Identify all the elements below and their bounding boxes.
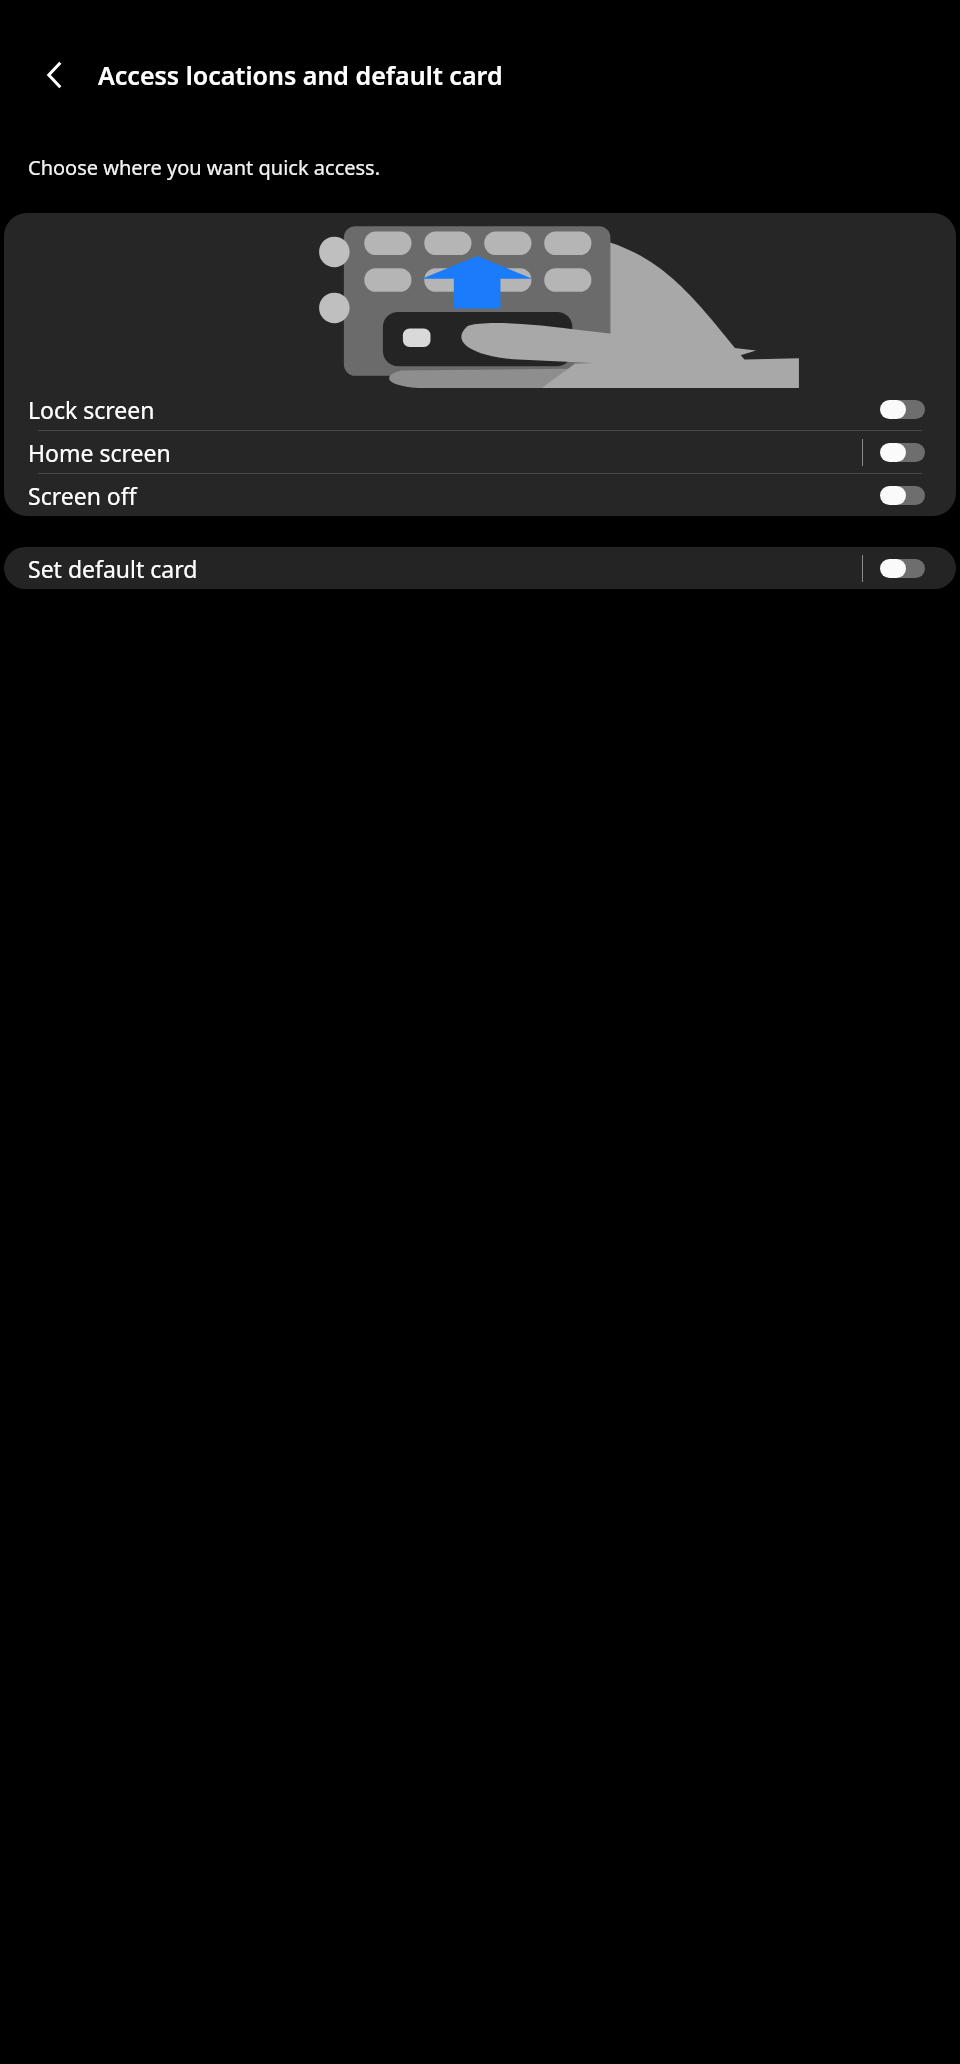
staticText: Home screen: [28, 437, 862, 468]
staticText: Set default card: [28, 553, 862, 584]
staticText: Choose where you want quick access.: [28, 154, 381, 181]
button[interactable]: Lock screen: [4, 388, 956, 430]
button[interactable]: Screen off: [4, 474, 956, 516]
button[interactable]: Set default card: [4, 547, 956, 589]
staticText: Lock screen: [28, 394, 862, 425]
staticText: Access locations and default card: [98, 58, 503, 92]
button[interactable]: Back: [28, 47, 84, 103]
button[interactable]: Home screen: [4, 431, 956, 473]
staticText: Screen off: [28, 480, 862, 511]
